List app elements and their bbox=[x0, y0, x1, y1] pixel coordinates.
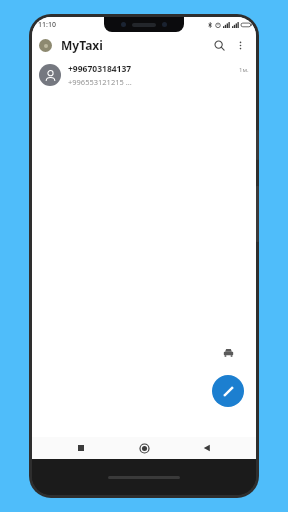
staticText: 1м. bbox=[239, 66, 249, 74]
staticText: 11:10 bbox=[38, 20, 56, 30]
button[interactable]: More options bbox=[231, 36, 249, 54]
button[interactable]: +996703184137 bbox=[32, 58, 256, 92]
button[interactable]: Back bbox=[198, 439, 216, 457]
button[interactable]: Profile bbox=[39, 39, 52, 52]
button[interactable]: New message bbox=[212, 375, 244, 407]
staticText: MyTaxi bbox=[61, 37, 103, 53]
button[interactable]: Recents bbox=[72, 439, 90, 457]
staticText: +996553121215 ... bbox=[68, 77, 132, 87]
button[interactable]: Order taxi bbox=[215, 339, 241, 365]
button[interactable]: Search bbox=[209, 35, 229, 55]
staticText: +996703184137 bbox=[68, 63, 132, 75]
button[interactable]: Home bbox=[135, 439, 153, 457]
